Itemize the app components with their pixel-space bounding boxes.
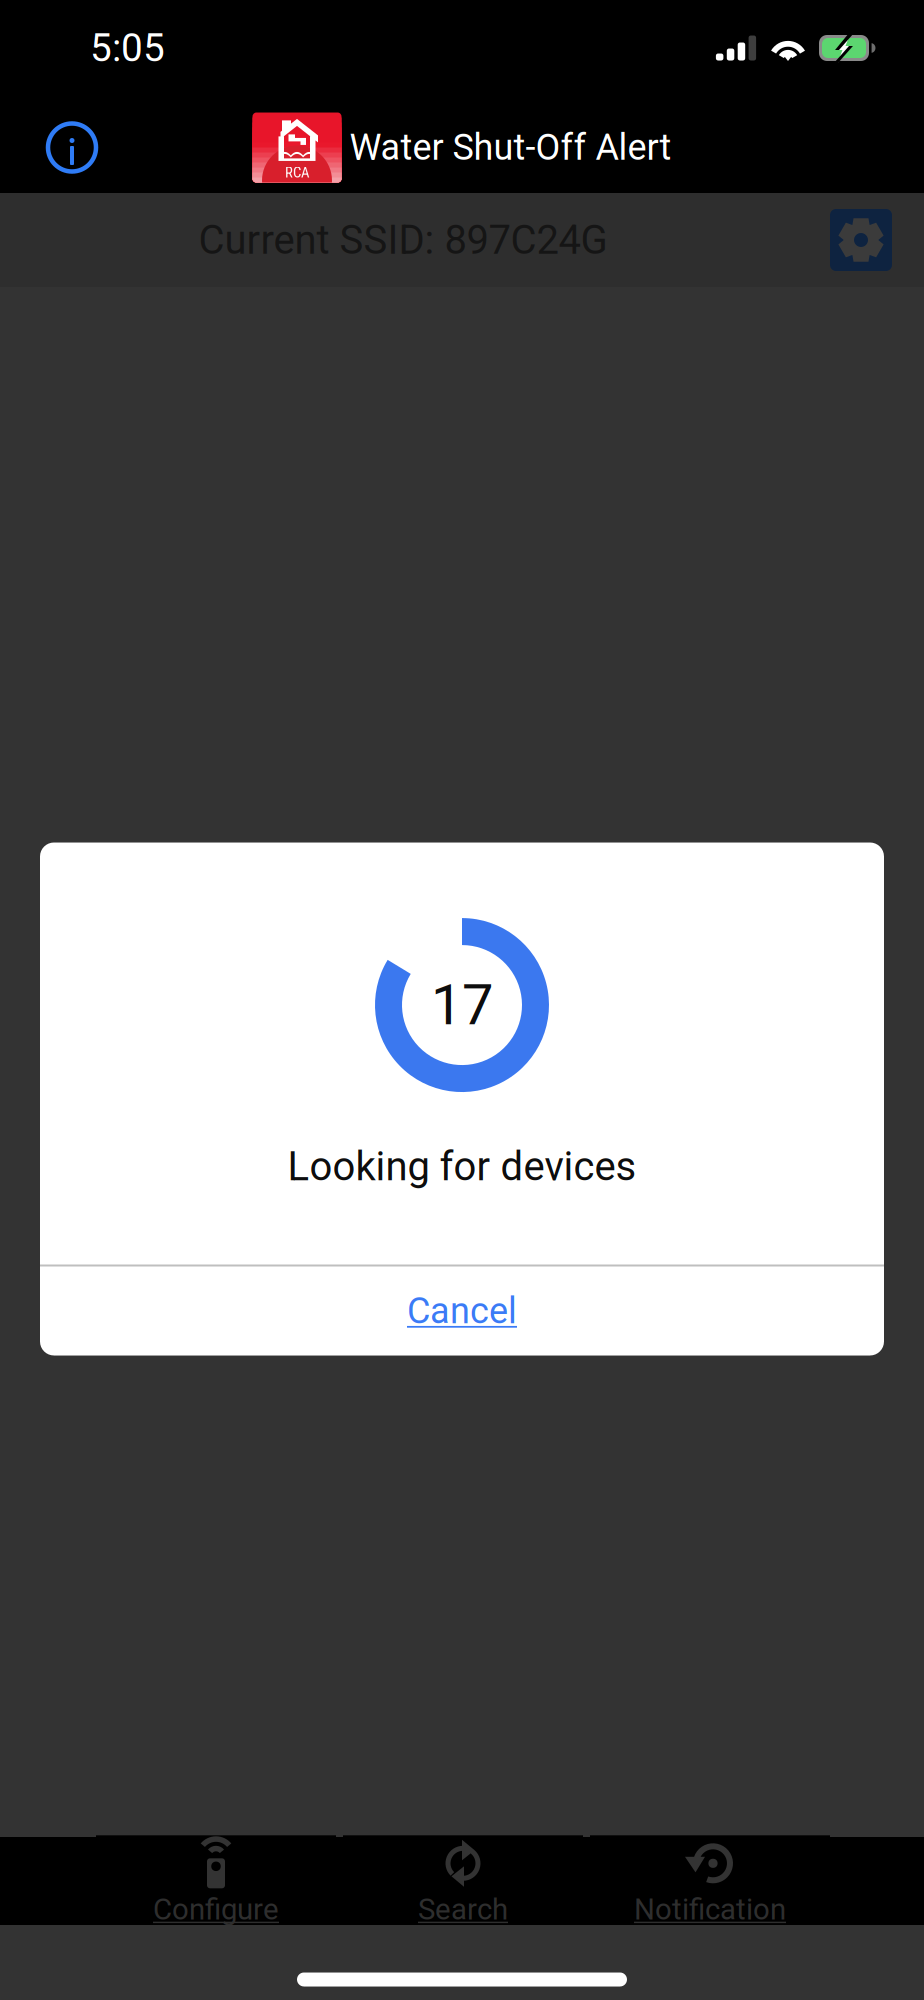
button[interactable]: Settings (830, 209, 892, 271)
staticText: Configure (153, 1892, 279, 1927)
staticText: 5:05 (90, 25, 165, 71)
staticText: Cancel (407, 1290, 517, 1332)
staticText: RCA (285, 164, 309, 181)
button[interactable]: Notification (590, 1837, 830, 1925)
staticText: Search (418, 1892, 508, 1927)
button[interactable]: Cancel (40, 1266, 884, 1355)
staticText: Current SSID: 897C24G (198, 217, 607, 263)
button[interactable]: Configure (96, 1837, 336, 1925)
staticText: Notification (634, 1892, 786, 1927)
staticText: 17 (431, 972, 493, 1038)
staticText: Looking for devices (287, 1143, 636, 1190)
button[interactable]: Search (343, 1837, 583, 1925)
staticText: Water Shut-Off Alert (349, 126, 671, 169)
button[interactable]: Info (28, 99, 116, 195)
